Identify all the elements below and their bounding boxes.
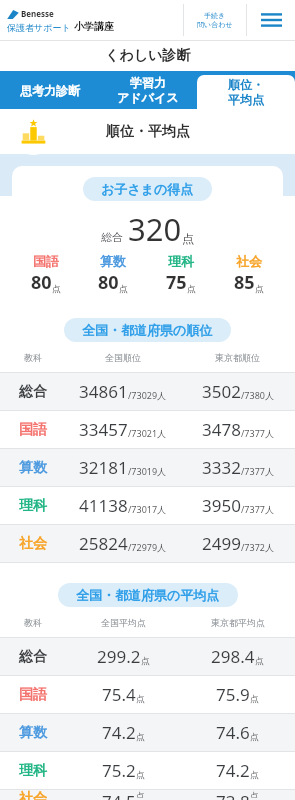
staticText: 全国順位 — [105, 352, 141, 363]
staticText: 順位・平均点 — [106, 123, 190, 141]
staticText: 3478 — [202, 418, 241, 441]
button[interactable]: 学習力 — [99, 71, 197, 109]
staticText: 85 — [234, 270, 255, 295]
button[interactable]: 社会 — [0, 525, 295, 562]
staticText: 74.6 — [216, 721, 250, 744]
staticText: 社会 — [19, 790, 47, 800]
staticText: /7380人 — [241, 389, 274, 401]
button[interactable]: 総合 — [0, 373, 295, 410]
staticText: 75.4 — [102, 683, 136, 706]
staticText: /72979人 — [128, 541, 167, 553]
staticText: 問い合わせ — [197, 20, 233, 29]
staticText: 小学講座 — [74, 20, 114, 33]
staticText: 点 — [136, 769, 145, 780]
staticText: 手続き — [204, 11, 226, 20]
staticText: 点 — [255, 655, 264, 666]
staticText: 点 — [52, 283, 61, 294]
staticText: 点 — [250, 693, 259, 704]
staticText: 32181 — [79, 456, 128, 479]
staticText: 41138 — [79, 494, 128, 517]
staticText: 国語 — [19, 686, 47, 704]
button[interactable]: 算数 — [0, 714, 295, 751]
staticText: 保護者サポート — [7, 22, 71, 33]
staticText: 総合 — [101, 230, 123, 244]
staticText: /73021人 — [128, 427, 167, 439]
staticText: 299.2 — [97, 645, 141, 668]
staticText: 80 — [98, 270, 119, 295]
staticText: 74.5 — [102, 790, 136, 800]
staticText: /7372人 — [241, 541, 274, 553]
staticText: /73017人 — [128, 503, 167, 515]
staticText: 298.4 — [211, 645, 255, 668]
staticText: /7377人 — [241, 503, 274, 515]
button[interactable]: 理科 — [0, 487, 295, 524]
staticText: 総合 — [19, 648, 47, 666]
staticText: 学習力 — [130, 75, 166, 90]
staticText: 33457 — [79, 418, 128, 441]
staticText: くわしい診断 — [105, 47, 191, 65]
staticText: 点 — [187, 283, 196, 294]
staticText: 順位・ — [228, 77, 264, 92]
staticText: 理科 — [168, 253, 194, 269]
staticText: 教科 — [24, 617, 42, 628]
staticText: 平均点 — [228, 92, 264, 107]
button[interactable]: 国語 — [0, 676, 295, 713]
staticText: 点 — [136, 731, 145, 742]
button[interactable]: 思考力診断 — [0, 71, 99, 109]
staticText: 理科 — [19, 497, 47, 515]
button[interactable]: メニュー — [247, 0, 295, 40]
staticText: /73029人 — [128, 389, 167, 401]
staticText: 点 — [136, 790, 145, 798]
button[interactable]: 社会 — [0, 790, 295, 800]
staticText: 思考力診断 — [20, 83, 80, 98]
staticText: 算数 — [100, 253, 126, 269]
staticText: 全国・都道府県の平均点 — [76, 587, 220, 603]
staticText: 75.2 — [102, 759, 136, 782]
staticText: 点 — [119, 283, 128, 294]
staticText: 点 — [250, 769, 259, 780]
staticText: 2499 — [202, 532, 241, 555]
button[interactable]: 順位・ — [197, 75, 295, 109]
staticText: 点 — [250, 790, 259, 798]
button[interactable]: 算数 — [0, 449, 295, 486]
button[interactable]: 総合 — [0, 638, 295, 675]
staticText: 74.2 — [102, 721, 136, 744]
staticText: 社会 — [19, 535, 47, 553]
staticText: お子さまの得点 — [101, 181, 194, 197]
staticText: 点 — [136, 693, 145, 704]
button[interactable]: 国語 — [0, 411, 295, 448]
staticText: 75.9 — [216, 683, 250, 706]
staticText: /7377人 — [241, 427, 274, 439]
staticText: 国語 — [19, 421, 47, 439]
staticText: /73019人 — [128, 465, 167, 477]
staticText: 74.2 — [216, 759, 250, 782]
staticText: 点 — [182, 231, 194, 246]
staticText: 全国・都道府県の順位 — [82, 322, 213, 338]
staticText: 全国平均点 — [101, 617, 146, 628]
staticText: 3502 — [202, 380, 241, 403]
staticText: 算数 — [19, 724, 47, 742]
staticText: 75 — [166, 270, 187, 295]
staticText: 算数 — [19, 459, 47, 477]
staticText: 総合 — [19, 383, 47, 401]
staticText: 東京都順位 — [215, 352, 260, 363]
button[interactable]: 理科 — [0, 752, 295, 789]
staticText: 点 — [141, 655, 150, 666]
staticText: アドバイス — [117, 90, 179, 105]
staticText: 3332 — [202, 456, 241, 479]
staticText: 25824 — [79, 532, 128, 555]
staticText: 73.8 — [216, 790, 250, 800]
staticText: Benesse — [21, 8, 54, 19]
staticText: 点 — [250, 731, 259, 742]
button[interactable]: 手続き — [184, 0, 246, 40]
staticText: 320 — [128, 208, 182, 250]
staticText: 3950 — [202, 494, 241, 517]
staticText: 理科 — [19, 762, 47, 780]
staticText: 国語 — [33, 253, 59, 269]
staticText: 点 — [255, 283, 264, 294]
staticText: /7377人 — [241, 465, 274, 477]
staticText: 80 — [31, 270, 52, 295]
staticText: 教科 — [24, 352, 42, 363]
staticText: 34861 — [79, 380, 128, 403]
staticText: 社会 — [236, 253, 262, 269]
